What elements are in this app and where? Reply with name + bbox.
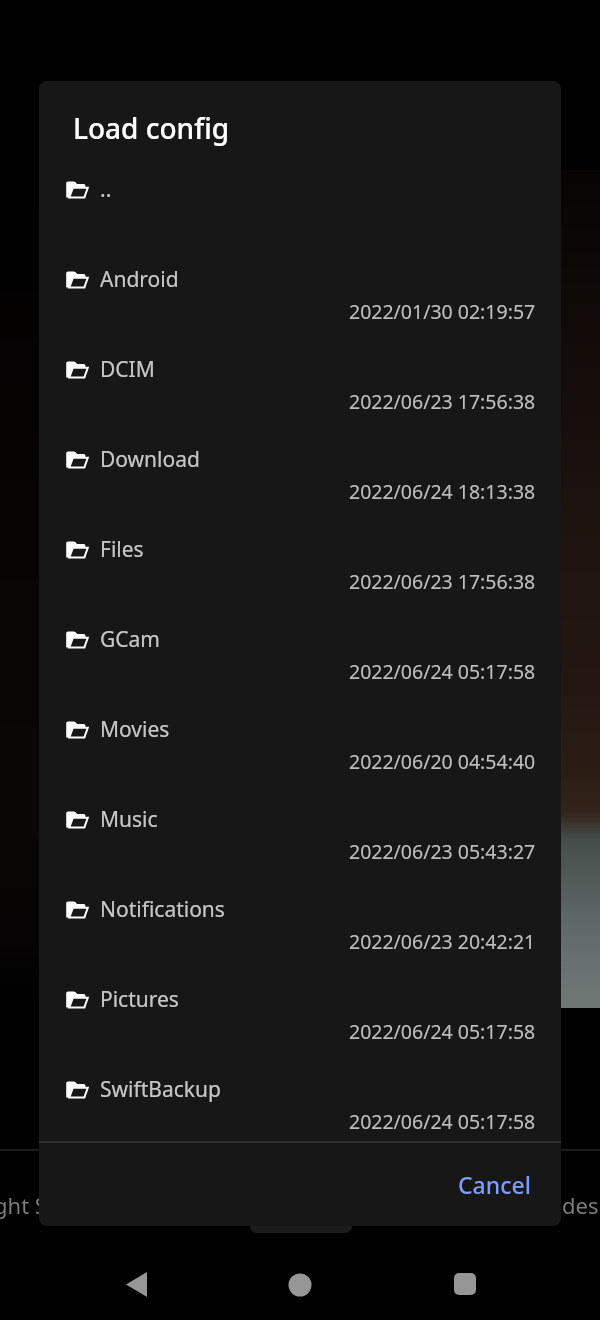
staticText: GCam [100, 625, 160, 654]
staticText: Cancel [458, 1169, 531, 1200]
staticText: 2022/06/23 17:56:38 [349, 388, 536, 414]
button[interactable]: Download [39, 437, 561, 527]
button[interactable]: Files [39, 527, 561, 617]
staticText: 2022/06/24 05:17:58 [349, 658, 536, 684]
staticText: 2022/06/24 18:13:38 [349, 478, 536, 504]
staticText: SwiftBackup [100, 1075, 221, 1104]
button[interactable]: Cancel [339, 1153, 531, 1215]
staticText: DCIM [100, 355, 155, 384]
staticText: 2022/06/24 05:17:58 [349, 1108, 536, 1134]
staticText: Android [100, 265, 179, 294]
staticText: des [562, 1190, 599, 1220]
staticText: Load config [73, 109, 230, 147]
staticText: Notifications [100, 895, 225, 924]
staticText: ght S [0, 1190, 47, 1220]
button[interactable]: Notifications [39, 887, 561, 977]
staticText: Music [100, 805, 158, 834]
button[interactable]: GCam [39, 617, 561, 707]
staticText: 2022/01/30 02:19:57 [349, 298, 536, 324]
staticText: Files [100, 535, 144, 564]
staticText: Pictures [100, 985, 179, 1014]
button[interactable]: Pictures [39, 977, 561, 1067]
staticText: 2022/06/23 17:56:38 [349, 568, 536, 594]
button[interactable]: SwiftBackup [39, 1067, 561, 1157]
button[interactable]: Android [39, 257, 561, 347]
staticText: 2022/06/23 05:43:27 [349, 838, 536, 864]
staticText: Download [100, 445, 200, 474]
button[interactable]: Music [39, 797, 561, 887]
button[interactable]: DCIM [39, 347, 561, 437]
staticText: 2022/06/24 05:17:58 [349, 1018, 536, 1044]
staticText: 2022/06/20 04:54:40 [349, 748, 536, 774]
staticText: 2022/06/23 20:42:21 [349, 928, 536, 954]
button[interactable]: Movies [39, 707, 561, 797]
button[interactable]: .. [39, 167, 561, 257]
staticText: Movies [100, 715, 170, 744]
staticText: .. [100, 175, 112, 204]
